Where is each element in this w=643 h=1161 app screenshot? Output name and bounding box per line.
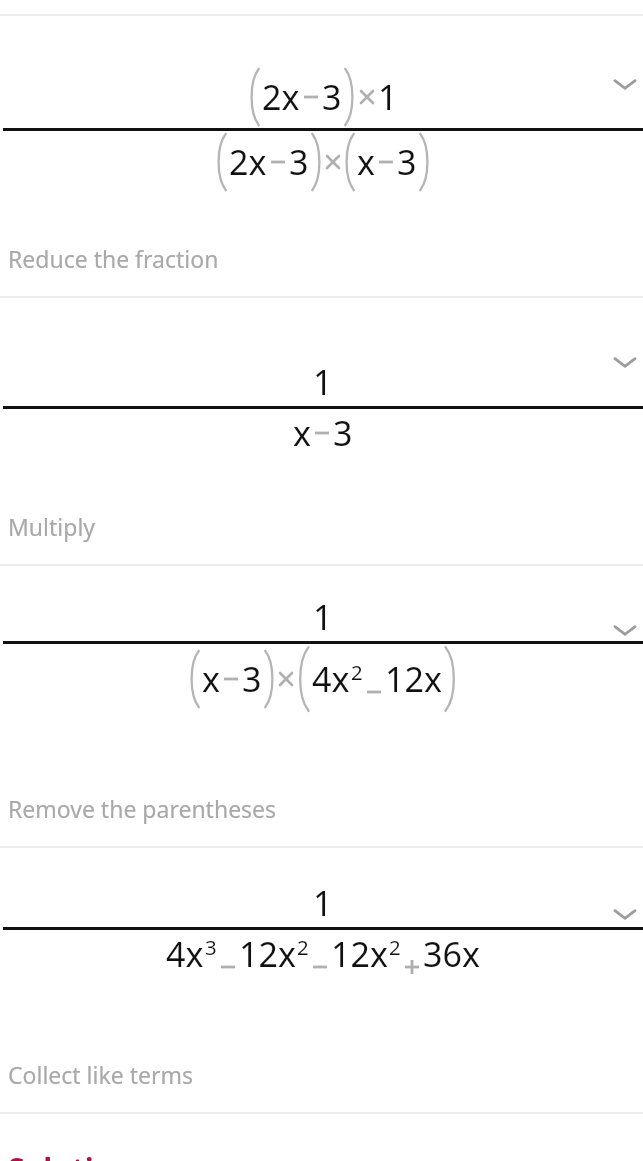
button[interactable]: 2x xyxy=(0,16,643,296)
staticText: 3 xyxy=(242,656,262,702)
staticText: 1 xyxy=(313,594,333,640)
staticText: 2 xyxy=(297,933,309,961)
staticText: 12x xyxy=(385,656,442,702)
staticText: 4x xyxy=(312,656,350,702)
staticText: 2 xyxy=(389,933,401,961)
staticText: 3 xyxy=(322,74,342,120)
button[interactable]: Expand step xyxy=(605,64,643,104)
button[interactable]: 1 xyxy=(0,298,643,564)
button[interactable]: Expand step xyxy=(605,894,643,934)
staticText: 3 xyxy=(333,410,353,456)
staticText: 12x xyxy=(239,931,296,977)
staticText: 3 xyxy=(397,139,417,185)
staticText: 2 xyxy=(351,658,363,686)
staticText: 2x xyxy=(229,139,267,185)
button[interactable]: 1 xyxy=(0,566,643,846)
staticText: 4x xyxy=(166,931,204,977)
staticText: Multiply xyxy=(8,511,96,542)
staticText: x xyxy=(357,139,375,185)
staticText: 12x xyxy=(331,931,388,977)
staticText: Remove the parentheses xyxy=(8,793,277,824)
staticText: 3 xyxy=(289,139,309,185)
button[interactable]: Expand step xyxy=(605,610,643,650)
button[interactable]: Expand step xyxy=(605,342,643,382)
staticText: 36x xyxy=(423,931,480,977)
staticText: 1 xyxy=(378,74,398,120)
staticText: Solution xyxy=(8,1148,132,1161)
staticText: 3 xyxy=(205,933,217,961)
staticText: 1 xyxy=(313,880,333,926)
staticText: x xyxy=(293,410,311,456)
button[interactable]: 1 xyxy=(0,848,643,1112)
staticText: Reduce the fraction xyxy=(8,243,219,274)
staticText: 1 xyxy=(313,359,333,405)
staticText: x xyxy=(202,656,220,702)
staticText: 2x xyxy=(262,74,300,120)
staticText: Collect like terms xyxy=(8,1059,194,1090)
